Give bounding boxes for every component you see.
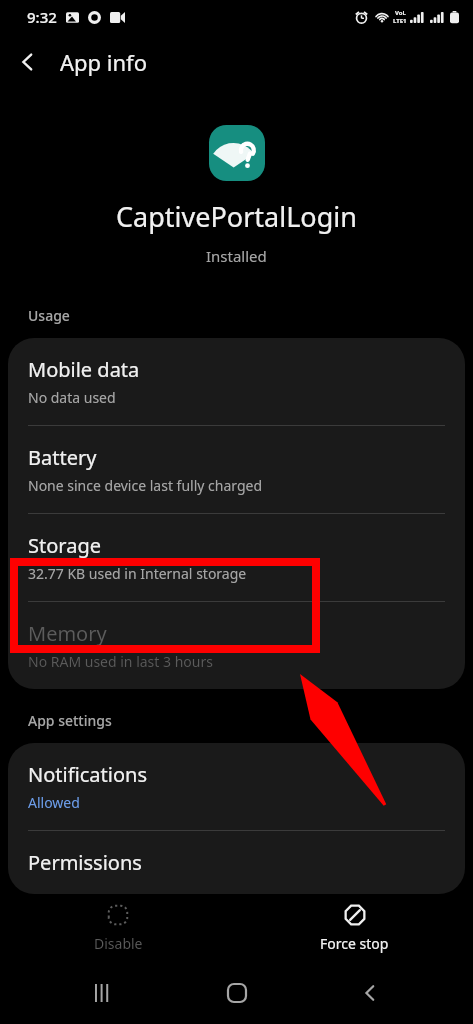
staticText: Storage [28, 532, 101, 559]
staticText: Allowed [28, 793, 80, 812]
staticText: 9:32 [27, 7, 57, 27]
button[interactable]: Back [339, 962, 401, 1024]
button[interactable]: Storage [8, 514, 465, 601]
button[interactable]: Home [206, 962, 268, 1024]
staticText: App info [60, 47, 147, 77]
staticText: VoL [395, 9, 406, 17]
staticText: Memory [28, 620, 107, 647]
staticText: Notifications [28, 761, 147, 788]
staticText: Disable [94, 934, 143, 953]
button[interactable]: Notifications [8, 743, 465, 830]
staticText: App settings [28, 711, 112, 730]
button[interactable]: Disable [0, 899, 236, 958]
button[interactable]: Force stop [236, 899, 473, 958]
button[interactable]: Recent apps [72, 962, 134, 1024]
staticText: No data used [28, 388, 116, 407]
staticText: Installed [206, 246, 267, 266]
staticText: Force stop [320, 934, 389, 953]
staticText: Mobile data [28, 356, 140, 383]
button[interactable]: Permissions [8, 831, 465, 894]
button[interactable]: Memory [8, 602, 465, 689]
staticText: None since device last fully charged [28, 476, 263, 495]
button[interactable]: Back [0, 34, 55, 89]
staticText: Battery [28, 444, 97, 471]
staticText: Usage [28, 306, 70, 325]
staticText: 32.77 KB used in Internal storage [28, 564, 247, 583]
button[interactable]: Mobile data [8, 338, 465, 425]
staticText: Permissions [28, 849, 142, 876]
button[interactable]: Battery [8, 426, 465, 513]
staticText: No RAM used in last 3 hours [28, 652, 213, 671]
staticText: CaptivePortalLogin [116, 198, 357, 235]
staticText: LTE1 [393, 17, 407, 25]
